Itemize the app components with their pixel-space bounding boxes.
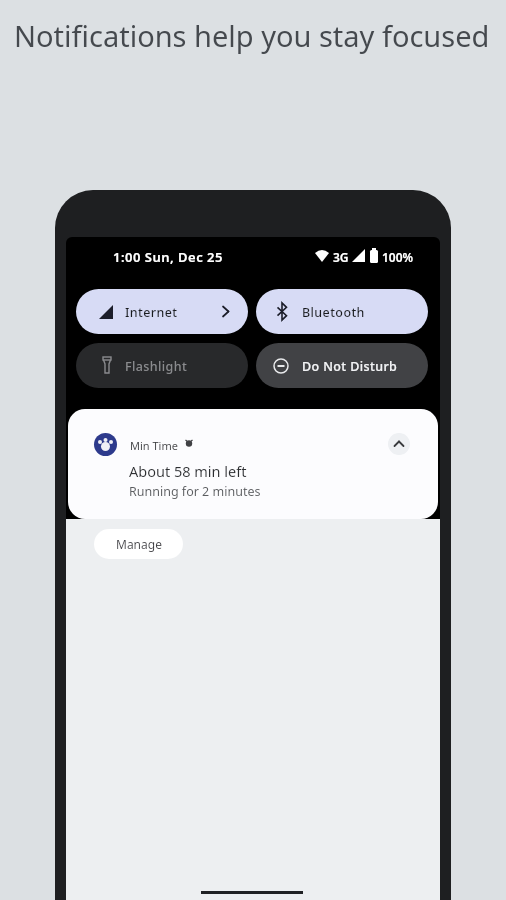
staticText: 3G — [333, 249, 349, 265]
staticText: Notifications help you stay focused — [14, 16, 490, 55]
staticText: Internet — [125, 304, 178, 321]
staticText: 1:00 Sun, Dec 25 — [113, 248, 223, 266]
button[interactable]: Min Time — [68, 409, 438, 519]
button[interactable] — [388, 433, 410, 455]
button[interactable]: Do Not Disturb — [256, 343, 428, 388]
staticText: Do Not Disturb — [302, 358, 398, 375]
button[interactable]: Bluetooth — [256, 289, 428, 334]
button[interactable]: Flashlight — [76, 343, 248, 388]
staticText: Manage — [116, 536, 162, 552]
button[interactable]: Internet — [76, 289, 248, 334]
staticText: Bluetooth — [302, 304, 365, 321]
staticText: About 58 min left — [129, 461, 247, 481]
staticText: Flashlight — [125, 358, 188, 375]
staticText: Min Time — [130, 438, 178, 453]
button[interactable]: Manage — [94, 529, 183, 559]
staticText: Running for 2 minutes — [129, 483, 261, 500]
staticText: 100% — [382, 249, 414, 265]
